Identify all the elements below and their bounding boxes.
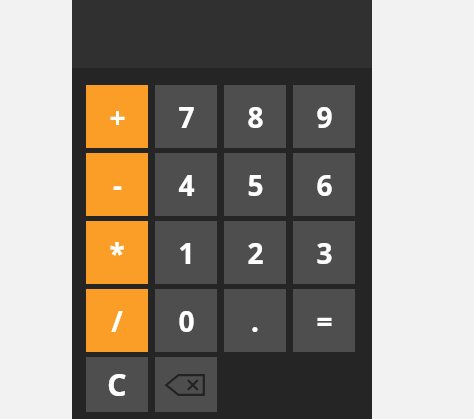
button[interactable]: -: [86, 153, 148, 216]
staticText: *: [109, 234, 125, 272]
button[interactable]: Backspace: [155, 357, 217, 412]
button[interactable]: 2: [224, 221, 286, 284]
button[interactable]: =: [293, 289, 355, 352]
button[interactable]: 6: [293, 153, 355, 216]
button[interactable]: 3: [293, 221, 355, 284]
button[interactable]: +: [86, 85, 148, 148]
staticText: 8: [247, 98, 264, 136]
staticText: 4: [178, 166, 195, 204]
staticText: C: [107, 364, 127, 405]
button[interactable]: 0: [155, 289, 217, 352]
staticText: -: [113, 166, 122, 204]
button[interactable]: 7: [155, 85, 217, 148]
staticText: .: [251, 302, 259, 340]
staticText: =: [316, 302, 333, 340]
staticText: /: [111, 302, 123, 340]
staticText: 6: [316, 166, 333, 204]
staticText: +: [109, 98, 126, 136]
button[interactable]: 5: [224, 153, 286, 216]
staticText: 3: [316, 234, 333, 272]
staticText: 5: [247, 166, 264, 204]
staticText: 7: [178, 98, 195, 136]
button[interactable]: /: [86, 289, 148, 352]
staticText: 2: [247, 234, 264, 272]
button[interactable]: 8: [224, 85, 286, 148]
staticText: 0: [178, 302, 195, 340]
button[interactable]: 1: [155, 221, 217, 284]
button[interactable]: C: [86, 357, 148, 412]
button[interactable]: 4: [155, 153, 217, 216]
staticText: 1: [178, 234, 195, 272]
button[interactable]: .: [224, 289, 286, 352]
button[interactable]: 9: [293, 85, 355, 148]
staticText: 9: [316, 98, 333, 136]
button[interactable]: *: [86, 221, 148, 284]
